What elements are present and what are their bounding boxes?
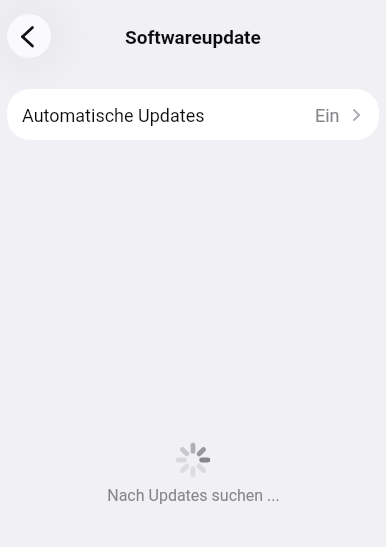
staticText: Softwareupdate [125, 26, 261, 48]
staticText: Ein [315, 105, 340, 126]
staticText: Nach Updates suchen ... [107, 486, 280, 505]
button[interactable]: Automatische Updates [7, 89, 379, 140]
staticText: Automatische Updates [22, 105, 205, 126]
button[interactable]: Back [7, 14, 51, 58]
